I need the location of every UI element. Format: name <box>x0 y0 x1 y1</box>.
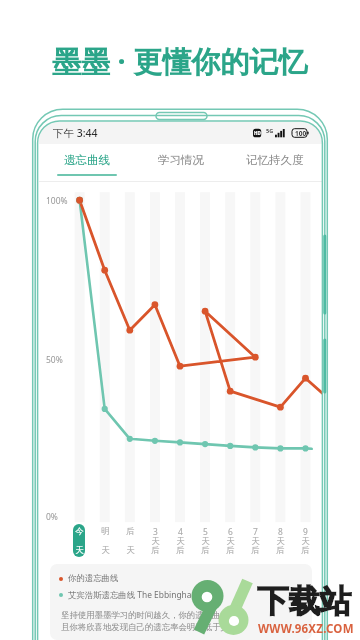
staticText: 100% <box>46 195 68 207</box>
staticText: 艾宾浩斯遗忘曲线 The Ebbinghaus <box>68 589 201 600</box>
staticText: 后 天 <box>126 526 135 555</box>
staticText: 学习情况 <box>158 153 204 167</box>
staticText: 0% <box>46 511 58 523</box>
button[interactable]: 明 天 <box>99 524 111 557</box>
button[interactable]: 7 天 后 <box>249 524 261 557</box>
button[interactable]: 你的遗忘曲线 <box>59 573 119 584</box>
staticText: 下载站 <box>257 582 352 622</box>
staticText: 50% <box>46 354 63 366</box>
staticText: 记忆持久度 <box>246 153 304 167</box>
staticText: 7 天 后 <box>251 526 260 555</box>
staticText: 100 <box>295 129 307 138</box>
button[interactable]: 学习情况 <box>134 144 228 174</box>
button[interactable]: 记忆持久度 <box>228 144 322 174</box>
button[interactable]: 遗忘曲线 <box>39 144 134 176</box>
staticText: 4 天 后 <box>176 526 185 555</box>
button[interactable]: 6 天 后 <box>224 524 236 557</box>
staticText: 5 天 后 <box>201 526 210 555</box>
button[interactable]: 9 天 后 <box>299 524 311 557</box>
staticText: 遗忘曲线 <box>64 153 110 167</box>
staticText: 你的遗忘曲线 <box>68 573 119 584</box>
staticText: 明 天 <box>101 526 110 555</box>
staticText: 且你将欣喜地发现自己的遗忘率会明显低于艾宾 <box>61 622 238 633</box>
staticText: 3 天 后 <box>151 526 160 555</box>
staticText: 今 天 <box>75 526 84 555</box>
button[interactable]: 5 天 后 <box>199 524 211 557</box>
button[interactable]: 艾宾浩斯遗忘曲线 The Ebbinghaus <box>59 589 201 600</box>
button[interactable]: 今 天 <box>73 524 85 557</box>
button[interactable]: 后 天 <box>124 524 136 557</box>
staticText: HD <box>254 130 261 136</box>
staticText: 9 天 后 <box>301 526 310 555</box>
button[interactable]: 3 天 后 <box>149 524 161 557</box>
staticText: 坚持使用墨墨学习的时间越久，你的遗忘曲线将 <box>61 610 238 621</box>
button[interactable]: 4 天 后 <box>174 524 186 557</box>
staticText: 8 天 后 <box>276 526 285 555</box>
staticText: 5G <box>266 127 274 134</box>
staticText: 墨墨 · 更懂你的记忆 <box>52 41 308 81</box>
staticText: 下午 3:44 <box>53 126 98 140</box>
button[interactable]: 8 天 后 <box>274 524 286 557</box>
staticText: 6 天 后 <box>226 526 235 555</box>
staticText: WWW.96XZ.COM <box>258 621 354 637</box>
